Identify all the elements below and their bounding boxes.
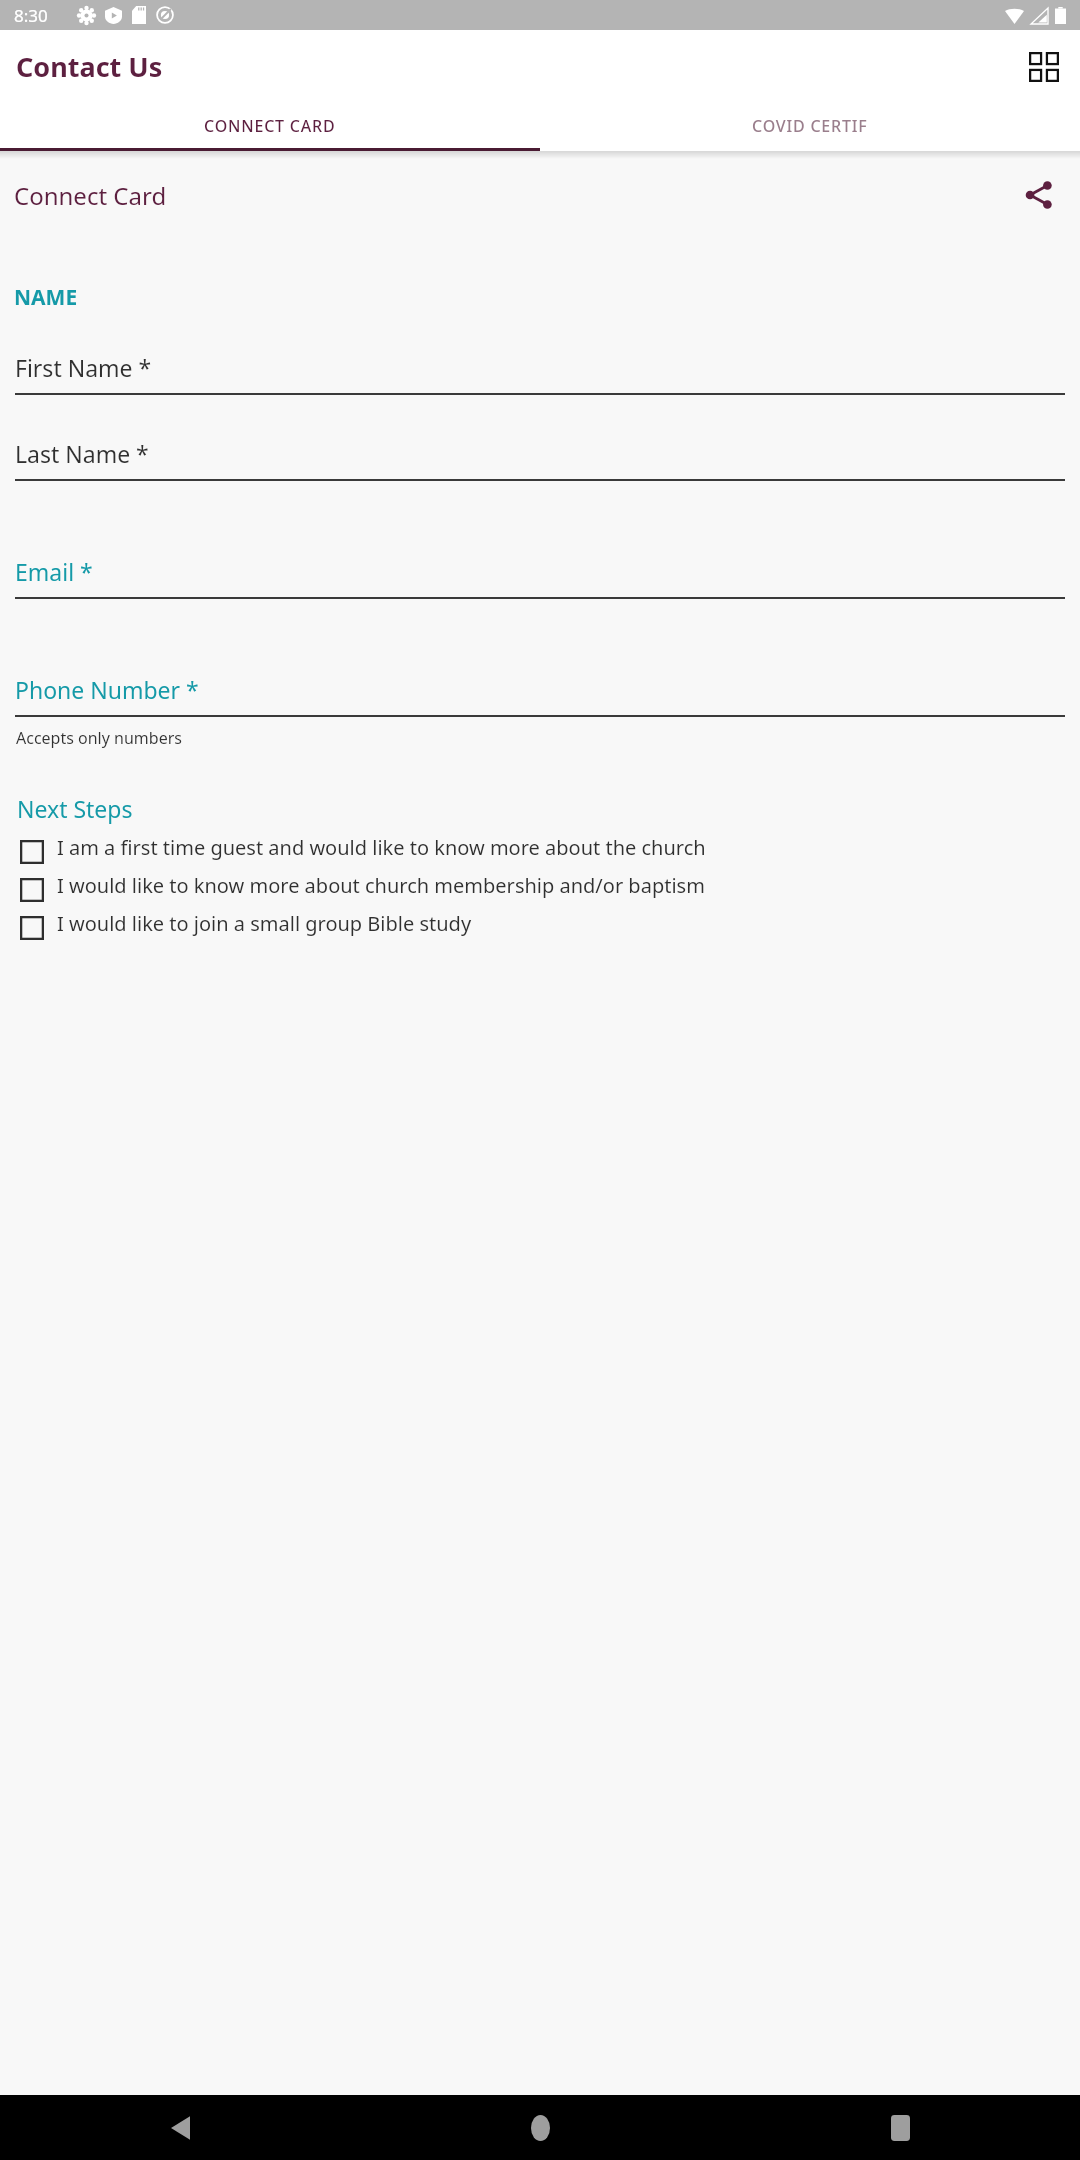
button[interactable]: Phone Number * [15,674,1065,717]
button[interactable]: First Name * [15,352,1065,395]
staticText: 8:30 [14,4,48,27]
staticText: Connect Card [14,179,167,212]
staticText: Contact Us [16,48,163,85]
button[interactable]: Share [1014,170,1064,220]
button[interactable]: Recent apps [720,2095,1080,2160]
button[interactable]: I would like to join a small group Bible… [20,910,1068,940]
staticText: First Name * [15,352,152,383]
button[interactable]: I am a first time guest and would like t… [20,834,1068,864]
button[interactable]: I would like to know more about church m… [20,872,1068,902]
button[interactable]: Email * [15,556,1065,599]
staticText: Phone Number * [15,674,199,705]
staticText: Last Name * [15,438,149,469]
staticText: CONNECT CARD [204,115,336,137]
staticText: I am a first time guest and would like t… [57,834,1068,861]
button[interactable]: Grid view [1018,41,1070,93]
button[interactable]: Back [0,2095,360,2160]
button[interactable]: CONNECT CARD [0,103,540,148]
staticText: Email * [15,556,93,587]
button[interactable]: COVID CERTIF [540,103,1080,148]
button[interactable]: Last Name * [15,438,1065,481]
staticText: I would like to know more about church m… [57,872,1068,899]
button[interactable]: Home [360,2095,720,2160]
staticText: I would like to join a small group Bible… [57,910,1068,937]
staticText: Next Steps [17,793,133,824]
staticText: Accepts only numbers [16,727,182,749]
staticText: COVID CERTIF [752,115,868,137]
staticText: NAME [14,283,78,312]
